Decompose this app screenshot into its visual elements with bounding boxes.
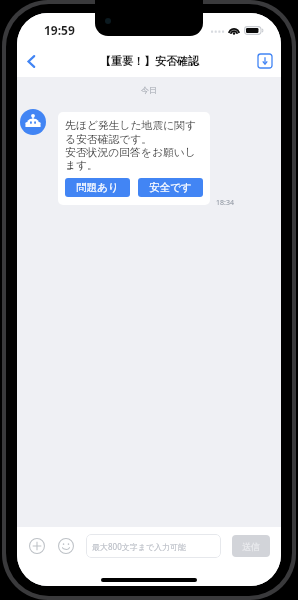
staticText: 安全です xyxy=(149,181,192,194)
staticText: 18:34 xyxy=(216,198,234,208)
staticText: 最大800文字まで入力可能 xyxy=(92,541,187,552)
staticText: 問題あり xyxy=(76,181,119,194)
button[interactable]: 送信 xyxy=(232,535,270,557)
staticText: 今日 xyxy=(17,85,281,95)
button[interactable]: Back xyxy=(18,48,44,74)
button[interactable]: Download xyxy=(254,50,276,72)
staticText: 先ほど発生した地震に関す る安否確認です。 安否状況の回答をお願いし ます。 xyxy=(65,119,197,172)
button[interactable]: Emoji xyxy=(55,535,77,557)
staticText: 送信 xyxy=(242,541,260,552)
button[interactable]: Add attachment xyxy=(26,535,48,557)
button[interactable]: 問題あり xyxy=(65,178,130,197)
button[interactable]: 最大800文字まで入力可能 xyxy=(86,534,221,558)
staticText: 【重要！】安否確認 xyxy=(100,54,199,68)
button[interactable]: 安全です xyxy=(138,178,203,197)
staticText: 19:59 xyxy=(44,22,75,38)
